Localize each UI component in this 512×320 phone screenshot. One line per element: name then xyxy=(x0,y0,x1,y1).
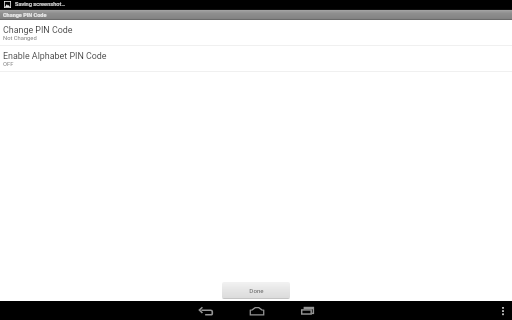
button[interactable]: Home xyxy=(249,301,264,320)
staticText: Not Changed xyxy=(3,35,37,42)
staticText: Saving screenshot… xyxy=(15,1,66,8)
staticText: Change PIN Code xyxy=(3,12,47,18)
button[interactable]: Change PIN Code xyxy=(0,20,512,46)
button[interactable]: Enable Alphabet PIN Code xyxy=(0,46,512,72)
staticText: Done xyxy=(249,287,264,294)
button[interactable]: Done xyxy=(222,282,290,299)
button[interactable]: More options xyxy=(494,301,512,320)
staticText: Enable Alphabet PIN Code xyxy=(3,51,107,61)
staticText: OFF xyxy=(3,61,14,68)
button[interactable]: Recent apps xyxy=(300,301,315,320)
staticText: Change PIN Code xyxy=(3,25,73,35)
button[interactable]: Back xyxy=(198,301,213,320)
